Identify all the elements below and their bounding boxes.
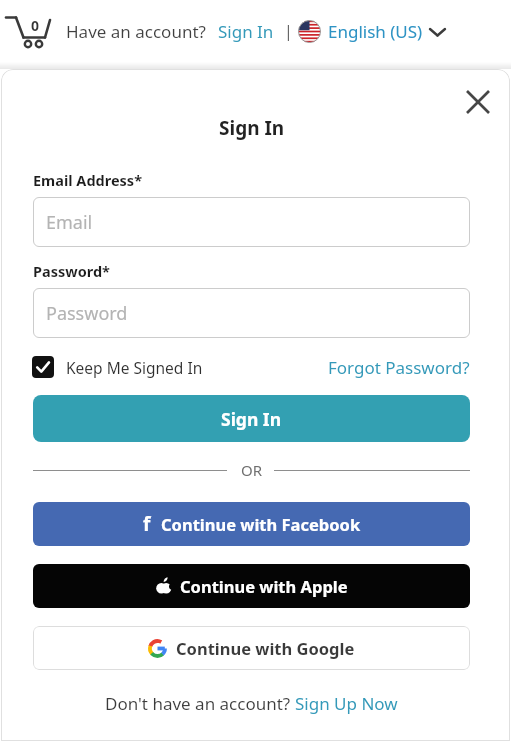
button[interactable]: Sign In	[33, 395, 470, 442]
button[interactable]: Continue with Google	[33, 626, 470, 670]
staticText: Password	[46, 301, 128, 326]
staticText: Have an account?	[66, 20, 206, 43]
staticText: 0	[31, 16, 40, 35]
staticText: OR	[241, 460, 263, 480]
button[interactable]: Continue with Apple	[33, 564, 470, 608]
button[interactable]: f	[33, 502, 470, 546]
staticText: Continue with Facebook	[161, 513, 361, 535]
staticText: Continue with Google	[176, 637, 355, 659]
staticText: Sign In	[221, 407, 282, 431]
staticText: Keep Me Signed In	[66, 357, 203, 378]
staticText: Email	[46, 210, 93, 235]
button[interactable]: Sign Up Now	[295, 692, 398, 715]
staticText: Sign In	[218, 20, 274, 43]
staticText: f	[143, 511, 151, 537]
button[interactable]	[462, 86, 494, 118]
button[interactable]: Sign In	[0, 0, 56, 30]
staticText: Continue with Apple	[180, 575, 348, 597]
button[interactable]: Forgot Password?	[270, 352, 470, 382]
staticText: |	[284, 20, 293, 42]
staticText: Don't have an account?	[105, 692, 295, 715]
staticText: Forgot Password?	[328, 356, 470, 379]
staticText: Sign In	[219, 115, 285, 141]
staticText: Email Address*	[33, 170, 142, 190]
button[interactable]: English (US)	[0, 0, 95, 30]
button[interactable]	[298, 20, 321, 43]
staticText: Password*	[33, 261, 110, 281]
button[interactable]	[32, 356, 54, 378]
staticText: English (US)	[328, 20, 423, 43]
button[interactable]: 0	[4, 12, 54, 52]
